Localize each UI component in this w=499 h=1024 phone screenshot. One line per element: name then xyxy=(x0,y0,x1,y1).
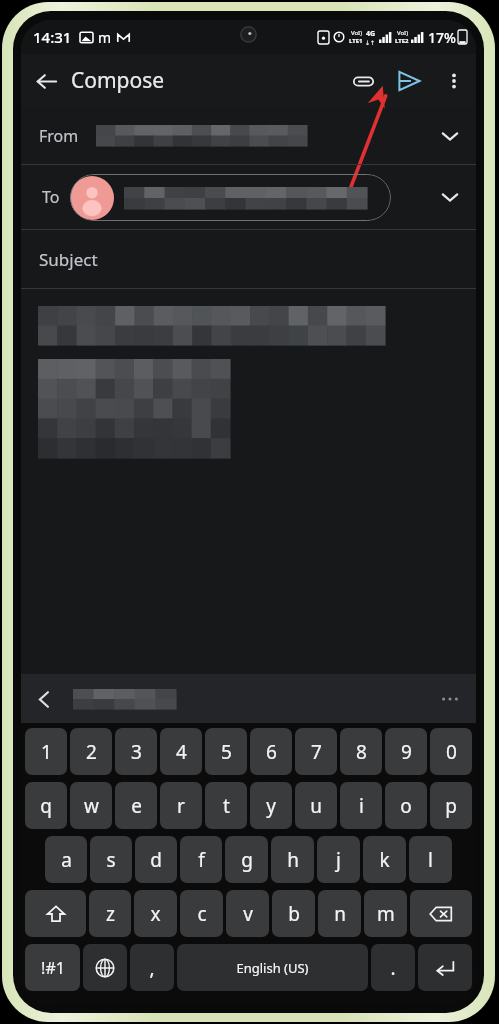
button[interactable]: g xyxy=(225,836,268,883)
button[interactable]: 4 xyxy=(160,728,202,775)
button[interactable]: More options xyxy=(432,59,476,103)
staticText: , xyxy=(149,955,155,981)
button[interactable]: Back xyxy=(21,56,71,106)
staticText: From xyxy=(39,125,79,147)
button[interactable] xyxy=(21,289,476,674)
button[interactable]: y xyxy=(250,782,292,829)
button[interactable] xyxy=(70,174,391,221)
staticText: d xyxy=(150,847,162,873)
button[interactable]: Backspace xyxy=(410,890,472,937)
button[interactable]: w xyxy=(70,782,112,829)
staticText: y xyxy=(266,793,276,819)
staticText: 3 xyxy=(131,739,142,765)
staticText: l xyxy=(428,847,433,873)
staticText: h xyxy=(287,847,299,873)
staticText: 2 xyxy=(86,739,97,765)
button[interactable]: j xyxy=(317,836,360,883)
staticText: r xyxy=(177,793,185,819)
staticText: VoI) xyxy=(397,29,408,37)
staticText: k xyxy=(379,847,390,873)
staticText: VoI) xyxy=(351,29,362,37)
button[interactable]: !#1 xyxy=(25,944,80,991)
button[interactable]: 9 xyxy=(385,728,427,775)
button[interactable]: . xyxy=(371,944,415,991)
button[interactable]: b xyxy=(272,890,315,937)
staticText: 4 xyxy=(176,739,187,765)
staticText: 14:31 xyxy=(33,27,72,47)
button[interactable]: , xyxy=(130,944,174,991)
button[interactable]: 7 xyxy=(295,728,337,775)
staticText: . xyxy=(390,955,396,981)
button[interactable]: Shift xyxy=(25,890,86,937)
staticText: 1 xyxy=(41,739,52,765)
staticText: p xyxy=(445,793,457,819)
button[interactable]: 3 xyxy=(115,728,157,775)
button[interactable]: Previous suggestion xyxy=(21,676,67,722)
button[interactable]: f xyxy=(180,836,222,883)
staticText: c xyxy=(197,901,207,927)
button[interactable]: d xyxy=(135,836,177,883)
button[interactable]: u xyxy=(295,782,337,829)
button[interactable]: a xyxy=(45,836,87,883)
staticText: Compose xyxy=(71,66,165,95)
button[interactable]: i xyxy=(340,782,382,829)
button[interactable]: 8 xyxy=(340,728,382,775)
staticText: z xyxy=(106,901,115,927)
staticText: o xyxy=(400,793,412,819)
staticText: q xyxy=(40,793,52,819)
staticText: To xyxy=(42,186,60,208)
button[interactable]: 6 xyxy=(250,728,292,775)
button[interactable]: z xyxy=(89,890,131,937)
button[interactable]: Subject xyxy=(21,230,476,288)
button[interactable]: 1 xyxy=(25,728,67,775)
staticText: b xyxy=(288,901,300,927)
button[interactable]: To xyxy=(21,165,476,229)
staticText: 7 xyxy=(311,739,322,765)
staticText: j xyxy=(336,847,341,873)
button[interactable]: o xyxy=(385,782,427,829)
staticText: Subject xyxy=(39,248,98,271)
staticText: 5 xyxy=(221,739,232,765)
button[interactable]: From xyxy=(21,107,476,164)
staticText: g xyxy=(241,847,253,873)
staticText: s xyxy=(106,847,116,873)
button[interactable]: English (US) xyxy=(177,944,368,991)
button[interactable]: s xyxy=(90,836,132,883)
button[interactable]: Attach file xyxy=(340,58,386,104)
button[interactable]: Expand recipients xyxy=(428,175,472,219)
button[interactable]: r xyxy=(160,782,202,829)
staticText: 6 xyxy=(266,739,277,765)
staticText: 4G xyxy=(366,29,376,39)
button[interactable]: v xyxy=(226,890,269,937)
staticText: LTE1 xyxy=(349,37,363,45)
staticText: 9 xyxy=(401,739,412,765)
button[interactable]: k xyxy=(363,836,406,883)
button[interactable]: 2 xyxy=(70,728,112,775)
staticText: LTE2 xyxy=(395,37,409,45)
button[interactable]: Enter xyxy=(418,944,472,991)
button[interactable]: l xyxy=(409,836,452,883)
button[interactable]: 5 xyxy=(205,728,247,775)
button[interactable]: m xyxy=(364,890,407,937)
button[interactable]: c xyxy=(180,890,223,937)
staticText: m xyxy=(377,901,395,927)
staticText: t xyxy=(223,793,230,819)
button[interactable]: Send xyxy=(386,58,432,104)
staticText: !#1 xyxy=(41,957,65,979)
button[interactable]: p xyxy=(430,782,472,829)
button[interactable]: Change language xyxy=(83,944,127,991)
staticText: n xyxy=(334,901,346,927)
button[interactable]: n xyxy=(318,890,361,937)
button[interactable]: q xyxy=(25,782,67,829)
staticText: w xyxy=(84,793,99,819)
staticText: m xyxy=(98,28,112,47)
button[interactable]: t xyxy=(205,782,247,829)
staticText: ↓↑ xyxy=(365,39,376,46)
button[interactable]: e xyxy=(115,782,157,829)
button[interactable]: 0 xyxy=(430,728,472,775)
button[interactable]: x xyxy=(134,890,177,937)
button[interactable]: More xyxy=(428,677,472,721)
staticText: 0 xyxy=(446,739,457,765)
button[interactable]: h xyxy=(271,836,314,883)
button[interactable]: Expand recipients xyxy=(428,114,472,158)
